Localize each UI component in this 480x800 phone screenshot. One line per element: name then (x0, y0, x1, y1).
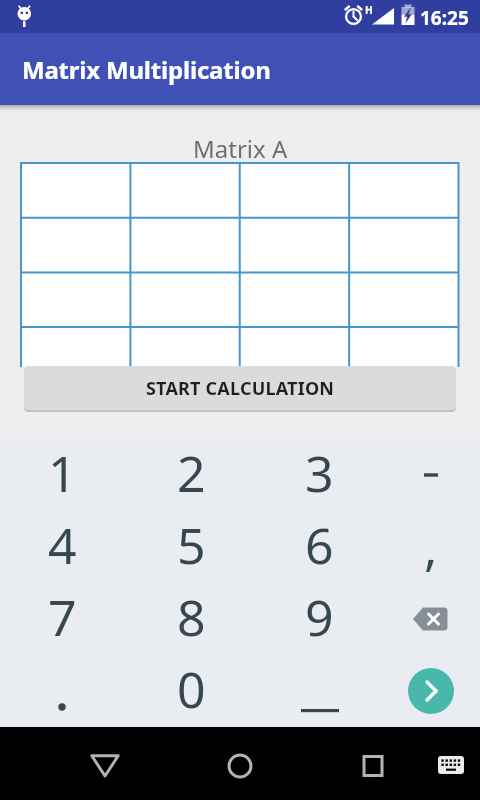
button[interactable] (289, 660, 349, 720)
button[interactable]: 6 (264, 511, 374, 583)
button[interactable]: , (376, 511, 480, 583)
staticText: , (424, 513, 438, 581)
button[interactable]: 8 (136, 583, 246, 655)
button[interactable] (132, 328, 238, 369)
button[interactable]: 7 (7, 583, 117, 655)
staticText: 4 (48, 511, 77, 579)
button[interactable] (242, 164, 348, 217)
staticText: 6 (305, 511, 334, 579)
button[interactable]: 3 (264, 439, 374, 511)
button[interactable] (343, 736, 403, 796)
staticText: 7 (48, 583, 77, 651)
button[interactable] (210, 736, 270, 796)
button[interactable] (242, 328, 348, 369)
button[interactable] (376, 439, 480, 511)
button[interactable]: 4 (7, 511, 117, 583)
button[interactable] (75, 736, 135, 796)
button[interactable] (376, 655, 480, 727)
staticText: 2 (177, 439, 206, 507)
button[interactable] (23, 328, 129, 369)
button[interactable] (242, 273, 348, 326)
staticText: 5 (177, 511, 206, 579)
button[interactable] (132, 219, 238, 272)
staticText: H (365, 3, 373, 17)
staticText: START CALCULATION (146, 376, 335, 401)
button[interactable] (351, 273, 457, 326)
button[interactable]: 1 (7, 439, 117, 511)
staticText: Matrix A (193, 132, 288, 165)
staticText: 3 (305, 439, 334, 507)
button[interactable]: 9 (264, 583, 374, 655)
staticText: 1 (48, 439, 77, 507)
button[interactable]: 0 (136, 655, 246, 727)
button[interactable] (23, 273, 129, 326)
button[interactable] (242, 219, 348, 272)
button[interactable] (351, 164, 457, 217)
button[interactable] (376, 583, 480, 655)
button[interactable] (132, 164, 238, 217)
staticText: 9 (305, 583, 334, 651)
button[interactable]: START CALCULATION (24, 366, 456, 410)
button[interactable] (132, 273, 238, 326)
button[interactable] (430, 751, 472, 779)
button[interactable] (351, 219, 457, 272)
staticText: 16:25 (420, 5, 469, 31)
button[interactable]: 2 (136, 439, 246, 511)
button[interactable] (32, 677, 92, 737)
staticText: 0 (177, 655, 206, 723)
button[interactable] (23, 219, 129, 272)
button[interactable] (23, 164, 129, 217)
staticText: Matrix Multiplication (22, 53, 271, 86)
staticText: 8 (177, 583, 206, 651)
button[interactable]: 5 (136, 511, 246, 583)
button[interactable] (351, 328, 457, 369)
